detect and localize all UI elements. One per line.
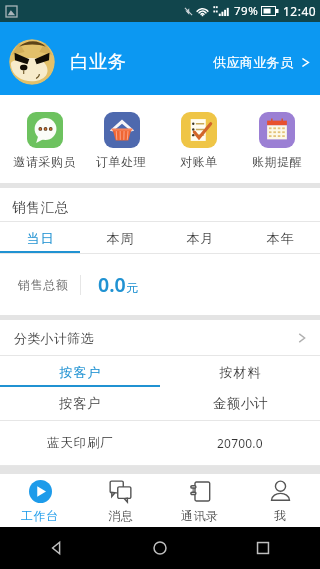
staticText: 分类小计筛选 <box>14 330 94 346</box>
staticText: 我 <box>274 508 287 523</box>
button[interactable]: 分类小计筛选 <box>0 320 320 355</box>
button[interactable]: 本月 <box>160 222 240 253</box>
button[interactable]: 本年 <box>240 222 320 253</box>
staticText: 0.0 <box>98 271 126 298</box>
button[interactable]: 按客户 <box>0 356 160 387</box>
button[interactable]: Back <box>44 535 70 561</box>
staticText: 对账单 <box>180 154 218 169</box>
button[interactable]: 邀请采购员 <box>6 112 83 183</box>
staticText: 销售汇总 <box>12 199 70 216</box>
staticText: 邀请采购员 <box>13 154 76 169</box>
staticText: 白业务 <box>70 50 127 73</box>
staticText: 供应商业务员 <box>213 54 294 70</box>
button[interactable]: 本周 <box>80 222 160 253</box>
staticText: 本年 <box>266 230 294 246</box>
button[interactable]: 消息 <box>80 474 160 527</box>
staticText: 工作台 <box>21 508 59 523</box>
staticText: 本周 <box>106 230 134 246</box>
button[interactable]: 当日 <box>0 222 80 253</box>
staticText: 当日 <box>26 230 54 246</box>
button[interactable]: 通讯录 <box>160 474 240 527</box>
button[interactable]: 订单处理 <box>83 112 160 183</box>
staticText: 按客户 <box>59 395 101 412</box>
staticText: 通讯录 <box>181 508 219 523</box>
button[interactable]: 对账单 <box>160 112 238 183</box>
staticText: 本月 <box>186 230 214 246</box>
button[interactable]: 蓝天印刷厂 <box>0 421 320 465</box>
button[interactable]: Recents <box>250 535 276 561</box>
button[interactable]: 按材料 <box>160 356 320 387</box>
staticText: 79% <box>234 3 259 19</box>
staticText: 消息 <box>108 508 133 523</box>
staticText: 账期提醒 <box>252 154 303 169</box>
button[interactable]: 我 <box>240 474 320 527</box>
staticText: 按材料 <box>219 364 261 380</box>
button[interactable]: 供应商业务员 <box>213 42 312 76</box>
button[interactable]: 工作台 <box>0 474 80 527</box>
staticText: 订单处理 <box>96 154 147 169</box>
staticText: 元 <box>126 280 138 295</box>
staticText: 20700.0 <box>217 435 263 451</box>
staticText: 金额小计 <box>213 395 268 412</box>
button[interactable]: Home <box>147 535 173 561</box>
staticText: 销售总额 <box>18 277 69 292</box>
staticText: 按客户 <box>59 364 101 380</box>
staticText: 蓝天印刷厂 <box>47 435 114 451</box>
staticText: 12:40 <box>283 3 317 19</box>
button[interactable]: 账期提醒 <box>238 112 316 183</box>
